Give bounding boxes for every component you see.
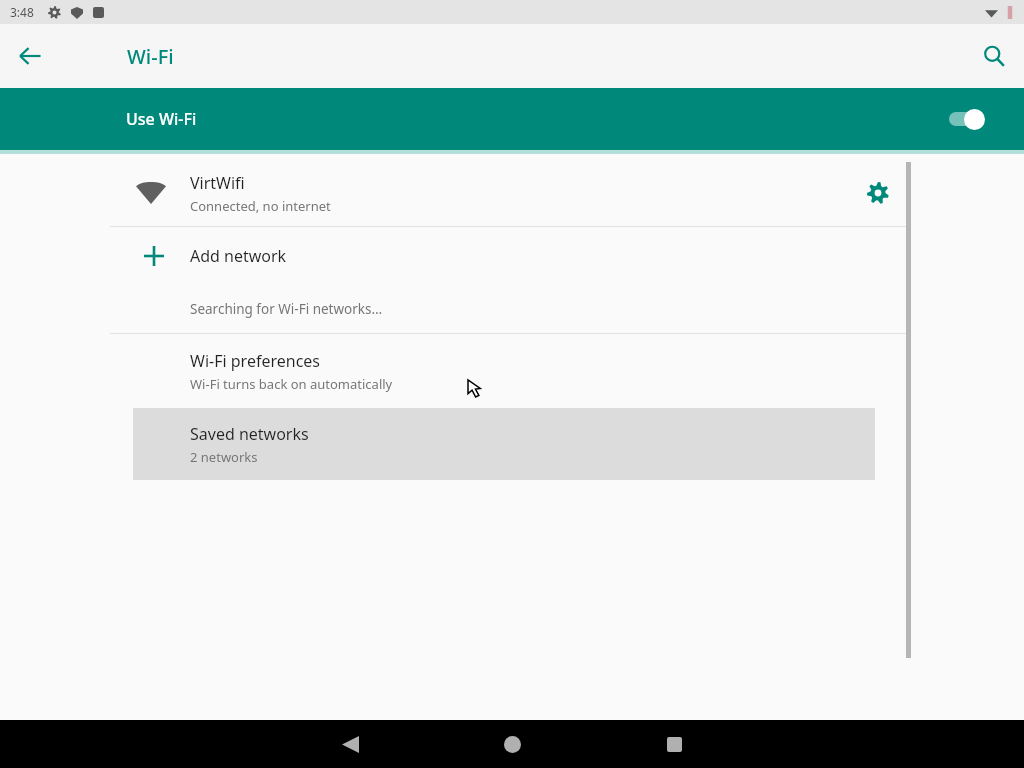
staticText: Wi-Fi turns back on automatically bbox=[190, 375, 393, 393]
staticText: VirtWifi bbox=[190, 172, 245, 194]
button[interactable]: Use Wi-Fi bbox=[0, 88, 1024, 150]
button[interactable]: Back bbox=[326, 720, 374, 768]
button[interactable]: Saved networks bbox=[133, 408, 875, 480]
button[interactable]: VirtWifi bbox=[0, 160, 1024, 226]
staticText: Use Wi-Fi bbox=[126, 108, 197, 130]
staticText: Connected, no internet bbox=[190, 197, 331, 215]
staticText: Saved networks bbox=[190, 423, 309, 445]
button[interactable]: Network settings bbox=[858, 173, 898, 213]
button[interactable]: Back bbox=[6, 32, 54, 80]
staticText: Add network bbox=[190, 245, 287, 267]
staticText: 3:48 bbox=[10, 4, 34, 20]
staticText: Searching for Wi-Fi networks… bbox=[190, 300, 383, 318]
button[interactable]: Wi-Fi preferences bbox=[0, 334, 1024, 408]
button[interactable]: Home bbox=[488, 720, 536, 768]
button[interactable]: Search bbox=[970, 32, 1018, 80]
staticText: Wi-Fi bbox=[127, 43, 174, 70]
button[interactable]: Add network bbox=[0, 227, 1024, 285]
staticText: Wi-Fi preferences bbox=[190, 350, 321, 372]
staticText: 2 networks bbox=[190, 448, 258, 466]
button[interactable]: Recent apps bbox=[650, 720, 698, 768]
